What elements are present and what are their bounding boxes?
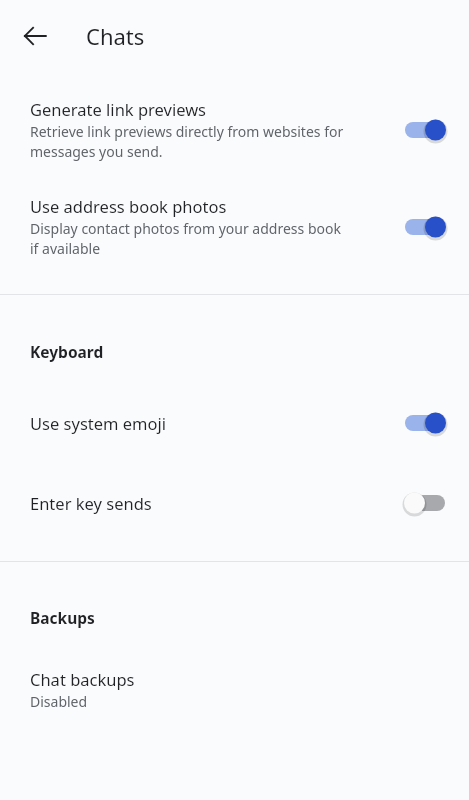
staticText: Generate link previews xyxy=(30,98,207,120)
button[interactable]: Chat backups xyxy=(0,628,469,711)
staticText: Use address book photos xyxy=(30,195,227,217)
staticText: Backups xyxy=(30,607,95,628)
staticText: Chats xyxy=(86,21,145,51)
staticText: Chat backups xyxy=(30,668,135,690)
staticText: Enter key sends xyxy=(30,492,152,514)
button[interactable]: Generate link previews xyxy=(0,72,469,161)
staticText: Disabled xyxy=(30,692,88,711)
staticText: Retrieve link previews directly from web… xyxy=(30,122,344,161)
button[interactable]: Use system emoji xyxy=(0,362,469,442)
button[interactable]: Enter key sends xyxy=(0,442,469,522)
staticText: Use system emoji xyxy=(30,412,166,434)
staticText: Display contact photos from your address… xyxy=(30,219,341,258)
staticText: Keyboard xyxy=(30,341,104,362)
button[interactable]: Use address book photos xyxy=(0,161,469,258)
button[interactable]: Back xyxy=(12,13,58,59)
